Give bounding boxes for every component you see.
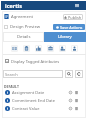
staticText: Library (58, 34, 72, 40)
button[interactable]: Library (44, 32, 86, 42)
button[interactable]: Search (65, 70, 73, 78)
staticText: Publish (68, 15, 82, 20)
button[interactable]: Tool 1 (11, 45, 18, 52)
button[interactable]: Delete (74, 90, 78, 94)
staticText: Design Preview (10, 24, 40, 30)
button[interactable]: Info (68, 98, 72, 102)
button[interactable]: Refresh (75, 70, 83, 78)
staticText: Assignment Date (12, 90, 45, 95)
staticText: Contract Value (12, 106, 40, 111)
button[interactable]: Tool 3 (35, 45, 42, 52)
staticText: DEFAULT (4, 84, 19, 89)
staticText: Details (17, 34, 31, 40)
button[interactable]: Tool 6 (71, 45, 78, 52)
button[interactable]: Display Tagged Attributes (5, 58, 60, 64)
button[interactable]: Tool 4 (47, 45, 54, 52)
staticText: Agreement (11, 14, 33, 20)
staticText: icertis (5, 2, 23, 9)
button[interactable]: Details (3, 32, 44, 42)
button[interactable]: Tool 5 (59, 45, 66, 52)
button[interactable]: Search (3, 70, 63, 78)
button[interactable]: icertis (1, 1, 86, 10)
button[interactable]: Commitment End Date (5, 96, 78, 104)
button[interactable]: Delete (74, 106, 78, 110)
staticText: Display Tagged Attributes (11, 59, 60, 64)
button[interactable]: Save Actions (53, 24, 85, 30)
button[interactable]: Info (68, 90, 72, 94)
button[interactable]: Publish (63, 14, 83, 20)
button[interactable]: Tool 2 (23, 45, 30, 52)
button[interactable]: Menu (75, 4, 79, 7)
staticText: Commitment End Date (12, 98, 55, 103)
button[interactable] (4, 25, 8, 29)
staticText: Save Actions (60, 25, 83, 30)
button[interactable]: Info (68, 106, 72, 110)
staticText: Search (5, 72, 18, 77)
button[interactable]: Delete (74, 98, 78, 102)
button[interactable]: Contract Value (5, 104, 78, 112)
button[interactable]: Assignment Date (5, 88, 78, 96)
